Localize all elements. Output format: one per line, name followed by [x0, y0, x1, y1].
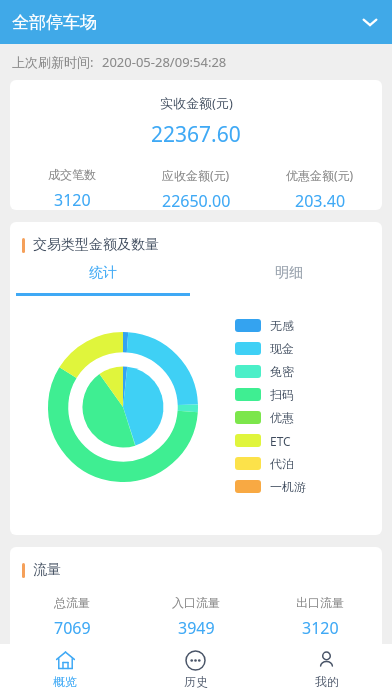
staticText: 应收金额(元)	[162, 167, 230, 183]
staticText: 203.40	[295, 190, 346, 210]
staticText: 2020-05-28/09:54:28	[102, 53, 227, 71]
button[interactable]: Overview	[0, 644, 130, 689]
staticText: 明细	[275, 264, 303, 282]
staticText: ETC	[270, 433, 291, 449]
staticText: 免密	[270, 364, 294, 379]
button[interactable]: History	[130, 644, 261, 689]
staticText: 3120	[54, 189, 91, 210]
staticText: 代泊	[270, 456, 294, 471]
button[interactable]: Profile	[261, 644, 392, 689]
staticText: 22367.60	[151, 120, 241, 149]
staticText: 7069	[54, 617, 91, 639]
staticText: 上次刷新时间:	[12, 53, 94, 71]
staticText: 出口流量	[296, 595, 344, 610]
staticText: 优惠	[270, 410, 294, 425]
staticText: 入口流量	[172, 595, 220, 610]
staticText: 全部停车场	[12, 12, 97, 33]
staticText: 我的	[315, 674, 339, 689]
button[interactable]: 明细	[196, 264, 382, 296]
staticText: 实收金额(元)	[160, 94, 233, 112]
staticText: 交易类型金额及数量	[33, 236, 159, 254]
staticText: 总流量	[54, 595, 90, 610]
staticText: 一机游	[270, 479, 306, 494]
staticText: 概览	[53, 674, 77, 689]
staticText: 3949	[178, 617, 215, 639]
staticText: 成交笔数	[48, 167, 96, 182]
staticText: 3120	[302, 617, 339, 639]
staticText: 无感	[270, 318, 294, 333]
staticText: 统计	[89, 264, 117, 282]
staticText: 扫码	[270, 387, 294, 402]
button[interactable]: Select parking lot	[348, 0, 392, 44]
staticText: 优惠金额(元)	[286, 167, 354, 183]
button[interactable]: 统计	[10, 264, 196, 296]
staticText: 历史	[184, 674, 208, 689]
staticText: 22650.00	[162, 190, 231, 210]
staticText: 流量	[33, 561, 61, 579]
staticText: 现金	[270, 341, 294, 356]
